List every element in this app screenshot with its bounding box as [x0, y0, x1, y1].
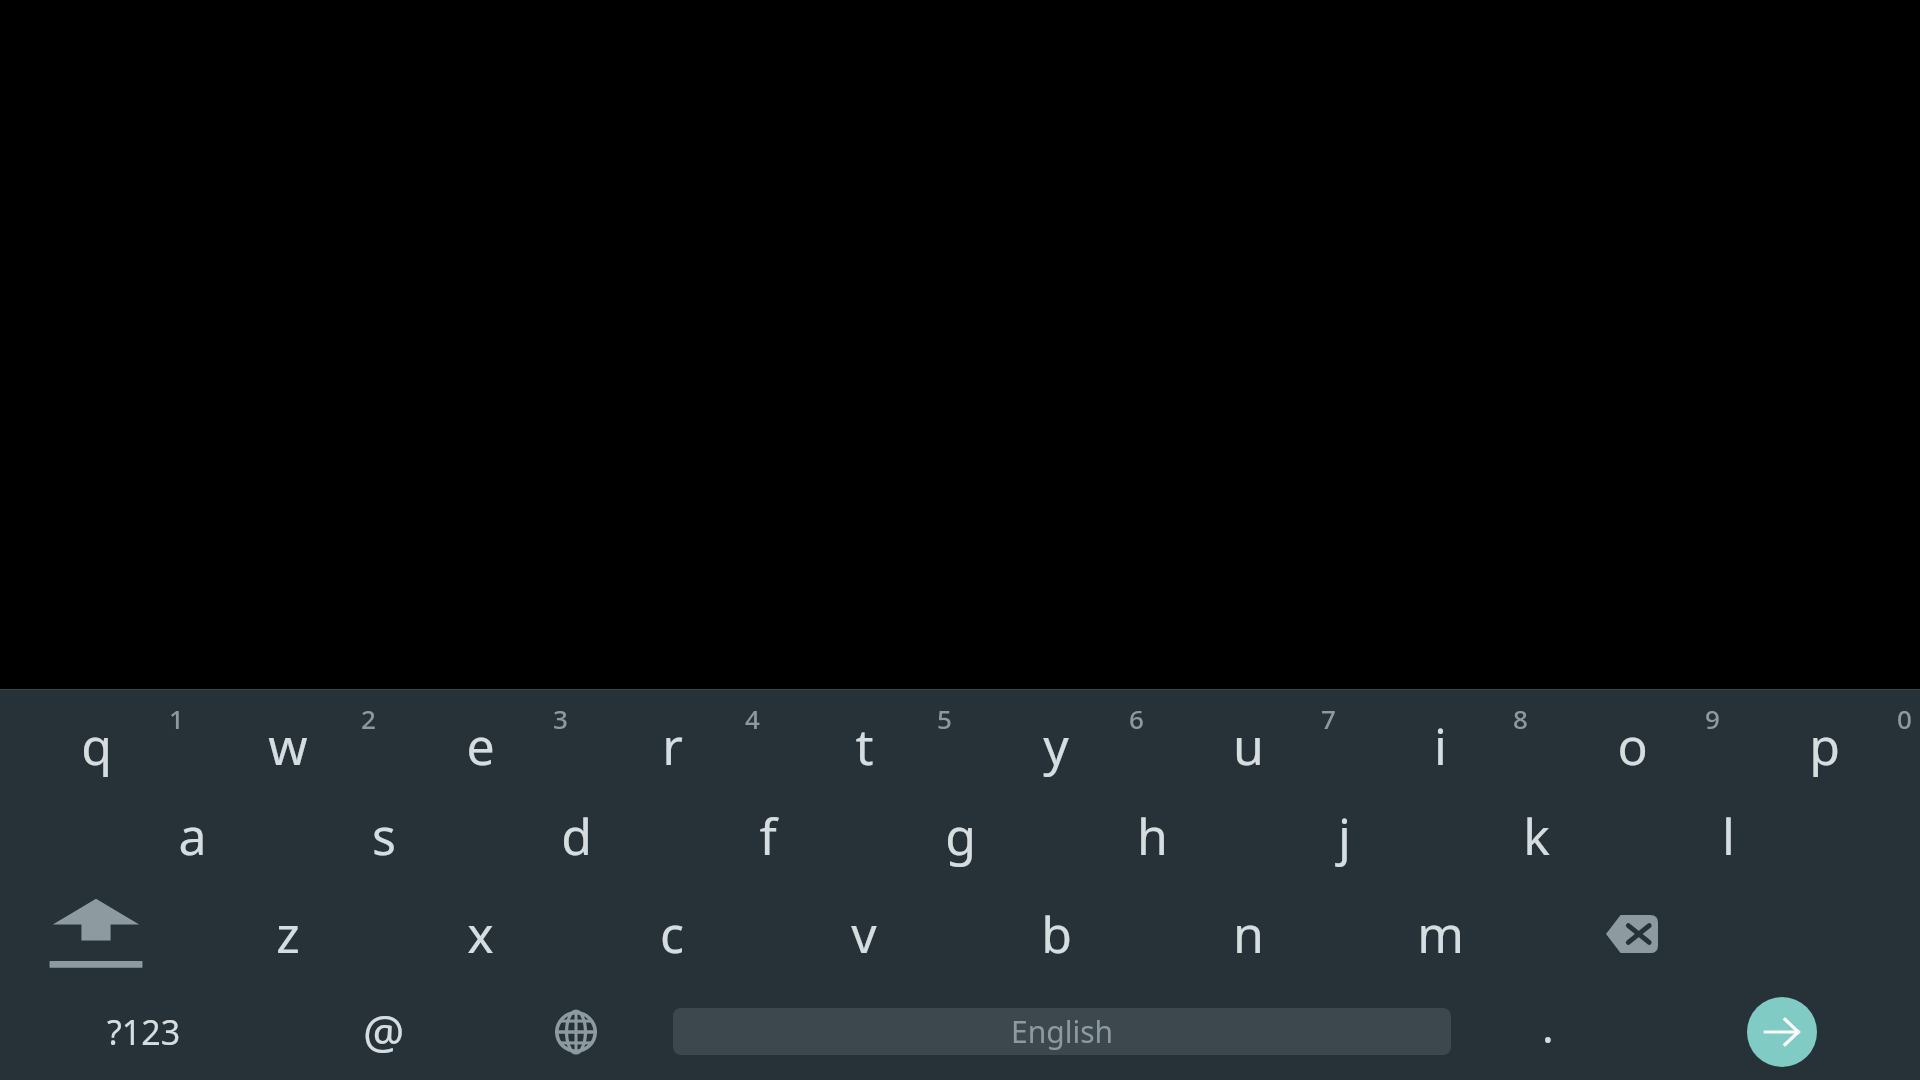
- button[interactable]: 3: [384, 689, 576, 787]
- button[interactable]: c: [576, 885, 768, 983]
- staticText: .: [1542, 996, 1554, 1056]
- button[interactable]: English: [673, 1008, 1451, 1055]
- staticText: 3: [553, 701, 568, 736]
- button[interactable]: k: [1440, 787, 1632, 885]
- button[interactable]: f: [672, 787, 864, 885]
- button[interactable]: Enter: [1747, 997, 1817, 1067]
- staticText: ?123: [107, 1009, 181, 1055]
- button[interactable]: z: [192, 885, 384, 983]
- button[interactable]: b: [960, 885, 1152, 983]
- button[interactable]: v: [768, 885, 960, 983]
- button[interactable]: g: [864, 787, 1056, 885]
- button[interactable]: ?123: [0, 983, 288, 1080]
- staticText: g: [945, 802, 976, 870]
- staticText: 6: [1129, 701, 1144, 736]
- staticText: t: [855, 712, 874, 780]
- button[interactable]: s: [288, 787, 480, 885]
- button[interactable]: Shift: [0, 885, 192, 983]
- button[interactable]: n: [1152, 885, 1344, 983]
- button[interactable]: 9: [1536, 689, 1728, 787]
- staticText: l: [1722, 802, 1735, 870]
- staticText: z: [276, 900, 300, 968]
- staticText: x: [467, 900, 494, 968]
- button[interactable]: 7: [1152, 689, 1344, 787]
- button[interactable]: Backspace: [1536, 885, 1728, 983]
- staticText: English: [1011, 1011, 1114, 1052]
- staticText: o: [1617, 712, 1648, 780]
- staticText: 0: [1897, 701, 1912, 736]
- staticText: q: [81, 712, 112, 780]
- button[interactable]: 2: [192, 689, 384, 787]
- button[interactable]: 8: [1344, 689, 1536, 787]
- staticText: a: [178, 802, 207, 870]
- staticText: 2: [361, 701, 376, 736]
- button[interactable]: j: [1248, 787, 1440, 885]
- staticText: b: [1041, 900, 1072, 968]
- staticText: m: [1417, 900, 1464, 968]
- staticText: j: [1338, 802, 1351, 870]
- staticText: i: [1434, 712, 1447, 780]
- staticText: @: [363, 1000, 405, 1063]
- button[interactable]: h: [1056, 787, 1248, 885]
- staticText: 4: [745, 701, 760, 736]
- staticText: r: [662, 712, 683, 780]
- button[interactable]: m: [1344, 885, 1536, 983]
- staticText: w: [268, 712, 308, 780]
- button[interactable]: x: [384, 885, 576, 983]
- button[interactable]: Change language: [480, 983, 672, 1080]
- staticText: d: [561, 802, 592, 870]
- staticText: 1: [169, 701, 184, 736]
- button[interactable]: 1: [0, 689, 192, 787]
- staticText: 9: [1705, 701, 1720, 736]
- button[interactable]: 5: [768, 689, 960, 787]
- staticText: v: [851, 900, 877, 968]
- staticText: h: [1137, 802, 1168, 870]
- staticText: f: [759, 802, 777, 870]
- staticText: 5: [937, 701, 952, 736]
- staticText: k: [1523, 802, 1550, 870]
- staticText: u: [1233, 712, 1264, 780]
- staticText: s: [372, 802, 396, 870]
- staticText: 7: [1321, 701, 1336, 736]
- button[interactable]: a: [96, 787, 288, 885]
- button[interactable]: 0: [1728, 689, 1920, 787]
- button[interactable]: d: [480, 787, 672, 885]
- staticText: n: [1233, 900, 1264, 968]
- button[interactable]: l: [1632, 787, 1824, 885]
- button[interactable]: .: [1452, 983, 1644, 1080]
- button[interactable]: @: [288, 983, 480, 1080]
- staticText: c: [660, 900, 684, 968]
- staticText: p: [1809, 712, 1840, 780]
- staticText: e: [466, 712, 495, 780]
- staticText: y: [1043, 712, 1069, 780]
- staticText: 8: [1513, 701, 1528, 736]
- button[interactable]: 4: [576, 689, 768, 787]
- button[interactable]: 6: [960, 689, 1152, 787]
